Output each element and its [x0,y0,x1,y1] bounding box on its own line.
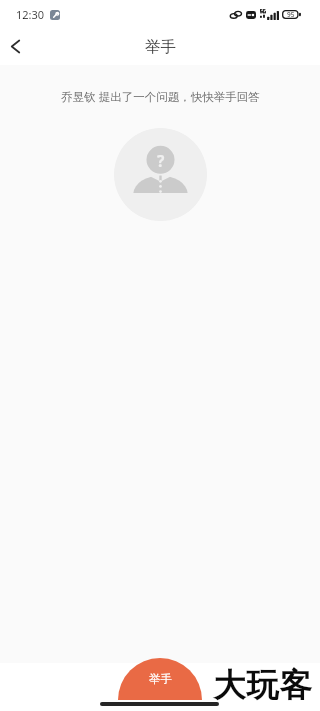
button[interactable]: 举手 [118,658,202,698]
staticText: ? [157,150,165,171]
staticText: 12:30 [16,7,45,22]
staticText: 95 [287,10,295,19]
button[interactable]: 返回 [0,28,44,65]
staticText: 举手 [149,672,172,686]
staticText: 乔昱钦 提出了一个问题，快快举手回答 [61,89,260,105]
staticText: 大玩客 [213,665,312,705]
staticText: 举手 [145,37,176,57]
